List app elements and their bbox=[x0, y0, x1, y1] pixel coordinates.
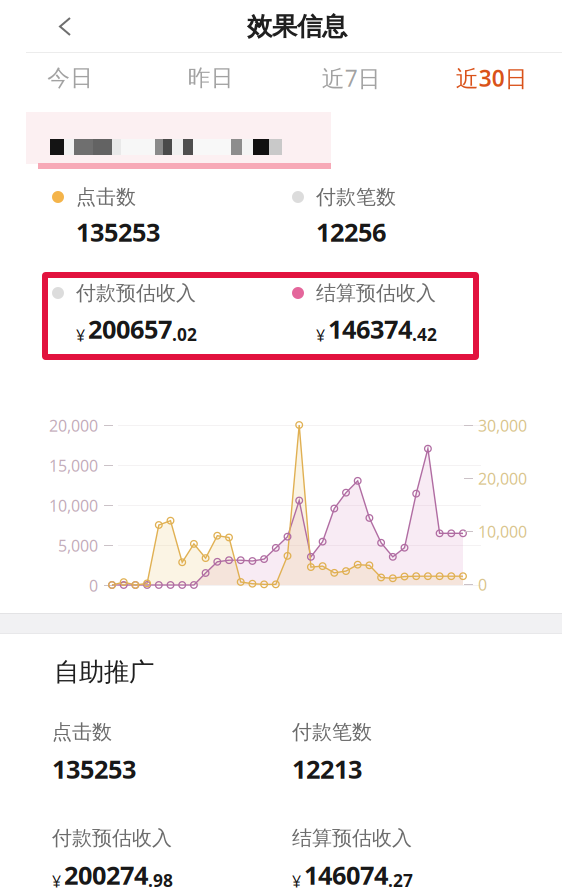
staticText: 付款预估收入 bbox=[76, 281, 196, 305]
button[interactable]: 昨日 bbox=[140, 53, 281, 103]
button[interactable]: 近7日 bbox=[281, 53, 421, 103]
staticText: 结算预估收入 bbox=[292, 826, 412, 850]
staticText: 10,000 bbox=[478, 521, 527, 542]
staticText: 20,000 bbox=[49, 415, 98, 436]
staticText: 20,000 bbox=[478, 468, 527, 489]
staticText: 12256 bbox=[316, 215, 386, 249]
staticText: .02 bbox=[172, 323, 197, 346]
staticText: ¥ bbox=[52, 871, 61, 892]
button[interactable]: 今日 bbox=[0, 53, 140, 103]
staticText: 146074 bbox=[304, 858, 388, 892]
staticText: 自助推广 bbox=[54, 656, 154, 687]
staticText: 结算预估收入 bbox=[316, 281, 436, 305]
staticText: 0 bbox=[478, 574, 487, 595]
staticText: 200657 bbox=[88, 312, 172, 346]
staticText: 200274 bbox=[64, 858, 148, 892]
staticText: 近30日 bbox=[456, 63, 528, 93]
staticText: 今日 bbox=[47, 64, 93, 92]
staticText: 135253 bbox=[52, 752, 136, 786]
staticText: 5,000 bbox=[58, 535, 98, 556]
staticText: 146374 bbox=[328, 312, 412, 346]
staticText: 135253 bbox=[76, 215, 160, 249]
staticText: 点击数 bbox=[76, 185, 136, 209]
staticText: 效果信息 bbox=[247, 11, 347, 42]
button[interactable]: Back bbox=[0, 2, 100, 51]
staticText: 付款笔数 bbox=[316, 185, 396, 209]
staticText: 付款笔数 bbox=[292, 720, 372, 744]
staticText: 15,000 bbox=[49, 455, 98, 476]
staticText: 30,000 bbox=[478, 415, 527, 436]
staticText: 近7日 bbox=[322, 63, 381, 93]
staticText: ¥ bbox=[292, 871, 301, 892]
staticText: 点击数 bbox=[52, 720, 112, 744]
staticText: .42 bbox=[412, 323, 437, 346]
button[interactable]: 近30日 bbox=[421, 53, 562, 103]
staticText: ¥ bbox=[76, 325, 85, 346]
staticText: .98 bbox=[148, 869, 173, 892]
staticText: .27 bbox=[388, 869, 413, 892]
staticText: ¥ bbox=[316, 325, 325, 346]
staticText: 昨日 bbox=[188, 64, 234, 92]
staticText: 12213 bbox=[292, 752, 362, 786]
staticText: 10,000 bbox=[49, 495, 98, 516]
staticText: 0 bbox=[89, 575, 98, 596]
staticText: 付款预估收入 bbox=[52, 826, 172, 850]
